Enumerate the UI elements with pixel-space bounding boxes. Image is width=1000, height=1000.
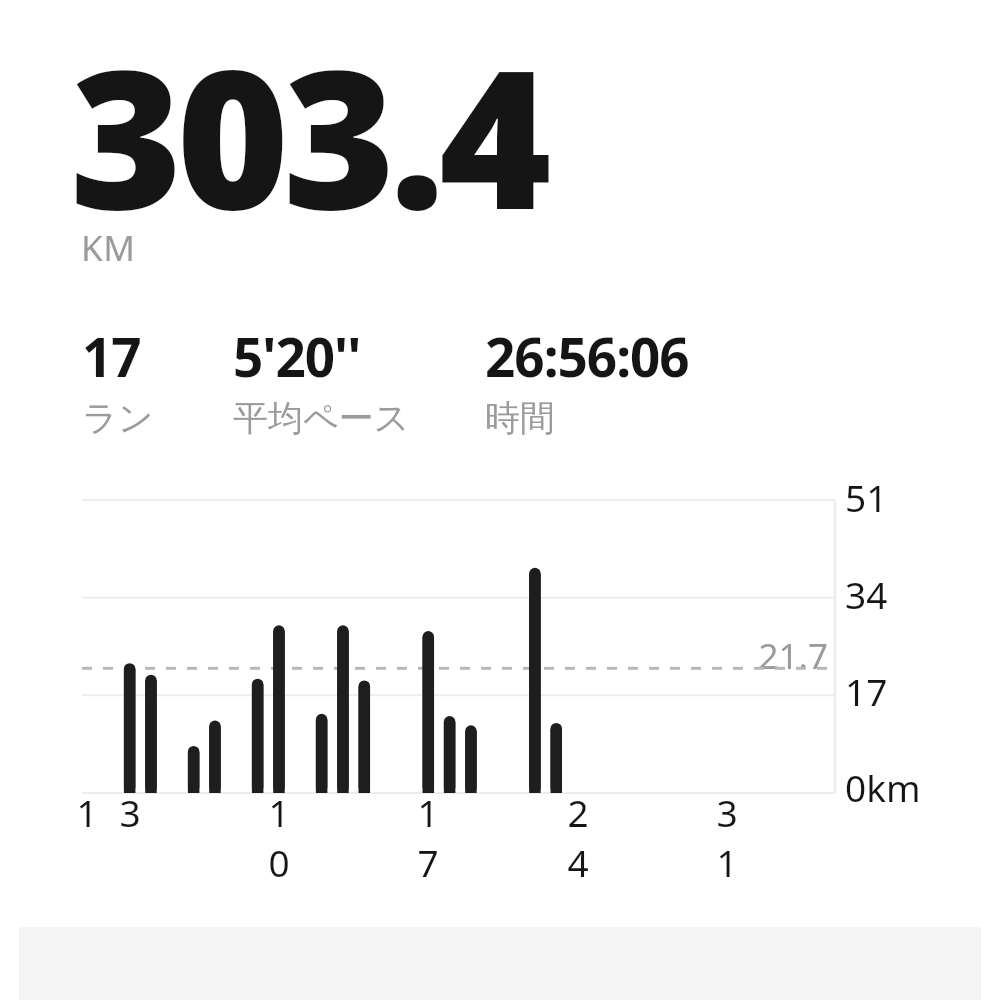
staticText: KM [81, 224, 136, 272]
staticText: 17 [82, 320, 141, 392]
staticText: 51 [845, 472, 888, 522]
button[interactable]: 17 [80, 320, 156, 440]
staticText: 1 [70, 787, 104, 837]
staticText: 時間 [485, 396, 555, 440]
button[interactable]: 5'20'' [231, 320, 412, 440]
staticText: 24 [561, 787, 595, 887]
staticText: 34 [845, 569, 888, 619]
staticText: 26:56:06 [485, 320, 689, 392]
staticText: 17 [411, 787, 445, 887]
staticText: ラン [82, 396, 154, 440]
staticText: 平均ペース [233, 396, 410, 440]
staticText: 17 [845, 666, 888, 716]
button[interactable]: 303.4 [70, 4, 546, 266]
staticText: 5'20'' [233, 320, 361, 392]
staticText: 3 [113, 787, 147, 837]
button[interactable]: Monthly distance chart [0, 0, 1000, 1000]
staticText: 0km [845, 762, 921, 812]
staticText: 31 [710, 787, 744, 887]
button[interactable]: 26:56:06 [483, 320, 691, 440]
staticText: 303.4 [70, 4, 546, 266]
staticText: 10 [262, 787, 296, 887]
staticText: 21.7 [700, 632, 828, 680]
